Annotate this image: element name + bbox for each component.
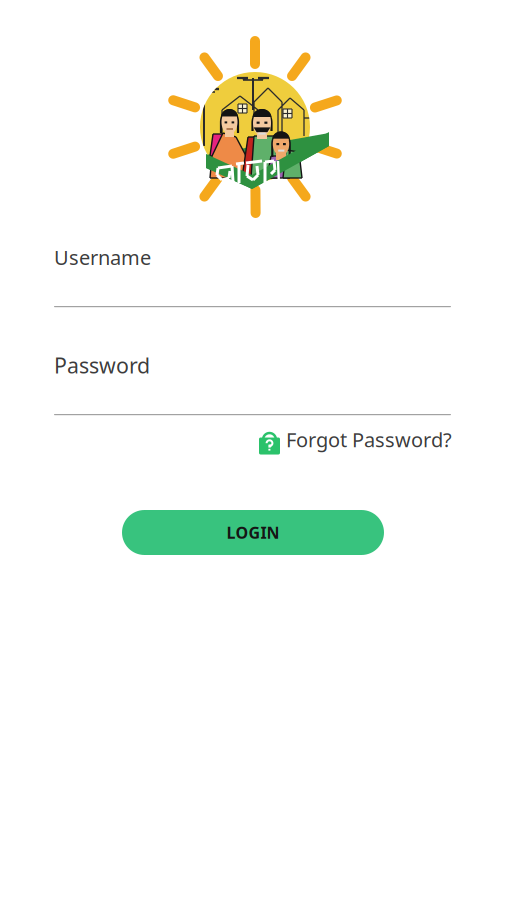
button[interactable]: LOGIN [122,510,384,555]
staticText: LOGIN [226,522,279,543]
button[interactable]: Forgot Password? [259,426,452,453]
staticText: Username [54,244,151,271]
staticText: Password [54,351,150,379]
button[interactable]: Password [54,351,451,415]
button[interactable]: Username [54,244,451,308]
staticText: Forgot Password? [286,426,452,453]
